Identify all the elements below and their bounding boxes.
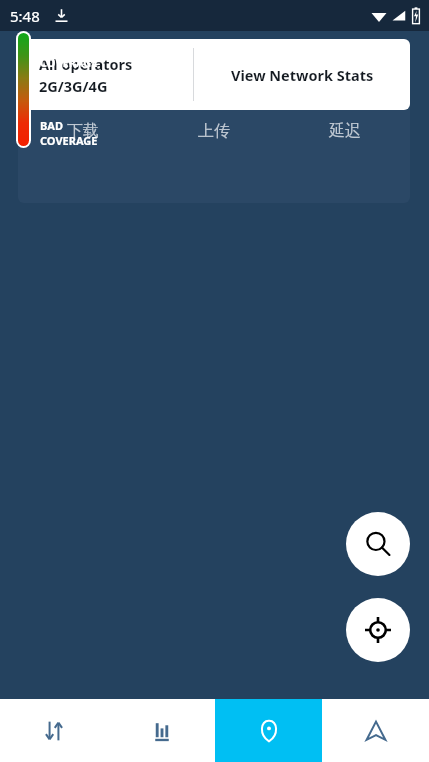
staticText: COVERAGE (40, 55, 98, 70)
button[interactable]: Speed test (0, 699, 108, 762)
button[interactable]: 下载 (18, 121, 148, 141)
button[interactable]: 上传 (148, 121, 279, 141)
staticText: 5:48 (10, 6, 40, 26)
staticText: 2G/3G/4G (39, 76, 108, 96)
button[interactable]: My location (346, 598, 410, 662)
button[interactable]: Search (346, 512, 410, 576)
staticText: 上传 (198, 121, 230, 141)
button[interactable]: View Network Stats (194, 39, 410, 110)
staticText: All operators (39, 54, 133, 74)
staticText: COVERAGE (40, 133, 98, 148)
staticText: 下载 (67, 121, 99, 141)
button[interactable]: 延迟 (279, 121, 410, 141)
button[interactable]: Statistics (108, 699, 215, 762)
button[interactable]: All operators (18, 39, 193, 110)
staticText: 延迟 (329, 121, 361, 141)
button[interactable]: Coverage map (215, 699, 322, 762)
staticText: BAD (40, 118, 63, 133)
button[interactable]: Navigate (322, 699, 429, 762)
staticText: View Network Stats (231, 65, 374, 85)
